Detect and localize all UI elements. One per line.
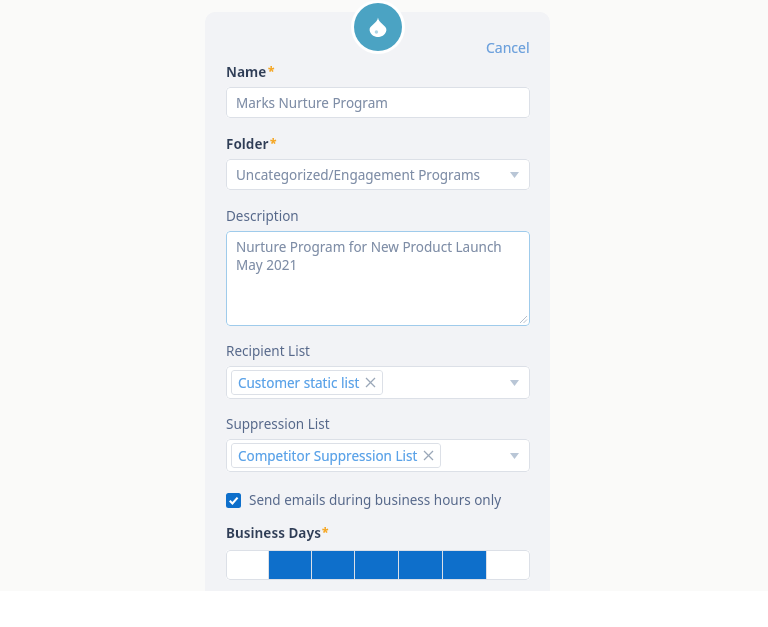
staticText: Suppression List — [226, 415, 330, 433]
button[interactable]: Marks Nurture Program — [226, 87, 530, 118]
staticText: Uncategorized/Engagement Programs — [236, 166, 481, 184]
staticText: Cancel — [486, 38, 530, 57]
button[interactable]: Send emails during business hours only — [226, 491, 502, 509]
staticText: Send emails during business hours only — [249, 491, 502, 509]
staticText: Marks Nurture Program — [236, 94, 388, 112]
button[interactable] — [487, 550, 530, 580]
button[interactable]: Competitor Suppression List — [226, 439, 530, 472]
staticText: Folder — [226, 135, 269, 153]
button[interactable]: Competitor Suppression List — [231, 443, 441, 468]
button[interactable] — [269, 550, 311, 580]
staticText: Customer static list — [238, 374, 360, 392]
staticText: * — [268, 63, 275, 79]
button[interactable]: Customer static list — [231, 370, 383, 395]
button[interactable]: Cancel — [226, 38, 530, 57]
button[interactable] — [355, 550, 398, 580]
button[interactable]: Uncategorized/Engagement Programs — [226, 159, 530, 190]
staticText: Description — [226, 207, 299, 225]
staticText: * — [270, 135, 277, 151]
staticText: Recipient List — [226, 342, 310, 360]
staticText: * — [322, 524, 329, 540]
staticText: May 2021 — [236, 256, 298, 274]
staticText: Business Days — [226, 524, 321, 542]
button[interactable]: Remove Customer static list — [365, 377, 376, 388]
button[interactable]: Nurture Program for New Product Launch — [226, 231, 530, 326]
staticText: Competitor Suppression List — [238, 447, 418, 465]
button[interactable] — [399, 550, 442, 580]
staticText: Name — [226, 63, 267, 81]
button[interactable] — [226, 550, 268, 580]
button[interactable]: Remove Competitor Suppression List — [423, 450, 434, 461]
button[interactable]: Program icon — [354, 3, 402, 51]
button[interactable] — [312, 550, 354, 580]
button[interactable]: Customer static list — [226, 366, 530, 399]
staticText: Nurture Program for New Product Launch — [236, 238, 502, 256]
button[interactable] — [443, 550, 486, 580]
